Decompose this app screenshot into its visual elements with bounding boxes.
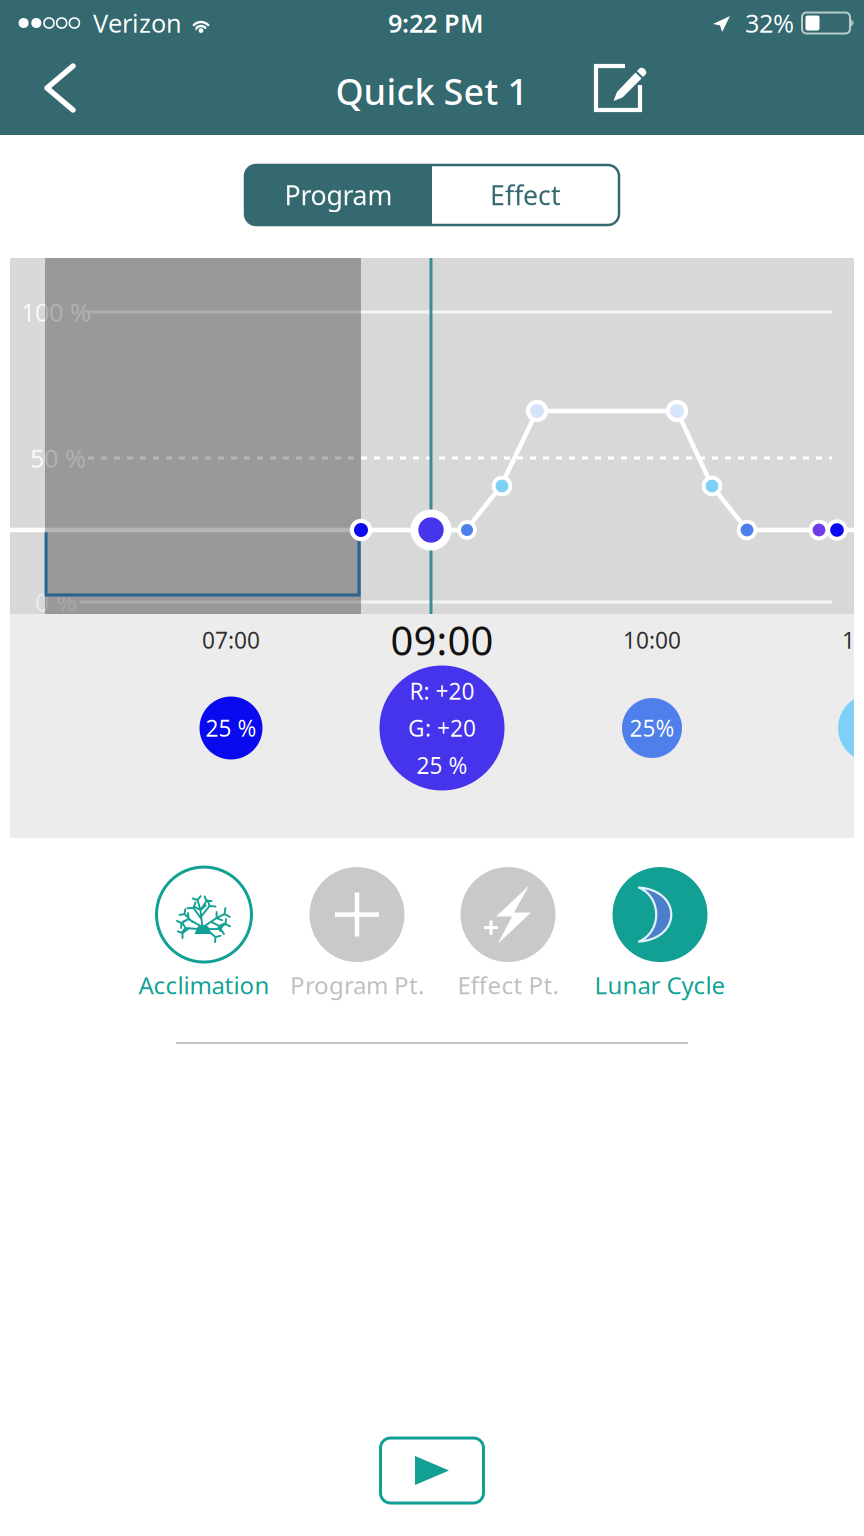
staticText: 25%: [629, 713, 674, 743]
staticText: G: +20: [408, 713, 476, 743]
button[interactable]: Back: [43, 54, 119, 122]
staticText: 25 %: [416, 750, 467, 780]
staticText: 09:00: [390, 613, 493, 666]
staticText: 07:00: [202, 625, 260, 655]
staticText: Quick Set 1: [335, 67, 528, 115]
button[interactable]: Edit: [580, 47, 664, 131]
button[interactable]: Lunar Cycle: [580, 864, 740, 1004]
staticText: Acclimation: [138, 969, 269, 1001]
button[interactable]: Acclimation: [124, 864, 284, 1004]
button[interactable]: Play: [380, 1438, 483, 1503]
button[interactable]: Program: [245, 165, 432, 225]
staticText: Program Pt.: [290, 969, 424, 1001]
staticText: 0 %: [35, 585, 77, 619]
staticText: 32%: [745, 6, 794, 40]
staticText: Effect Pt.: [457, 969, 558, 1001]
staticText: 50 %: [30, 441, 86, 475]
staticText: Effect: [490, 177, 561, 213]
staticText: 100 %: [21, 295, 91, 329]
button[interactable]: Effect: [432, 165, 619, 225]
staticText: 11:: [842, 625, 864, 655]
button[interactable]: Program Pt.: [277, 864, 437, 1004]
staticText: 25 %: [205, 713, 256, 743]
staticText: 9:22 PM: [388, 6, 484, 40]
button[interactable]: Effect Pt.: [428, 864, 588, 1004]
staticText: Program: [284, 177, 392, 213]
staticText: Verizon: [93, 6, 182, 40]
staticText: 10:00: [623, 625, 681, 655]
staticText: R: +20: [409, 676, 474, 706]
staticText: Lunar Cycle: [594, 969, 725, 1001]
